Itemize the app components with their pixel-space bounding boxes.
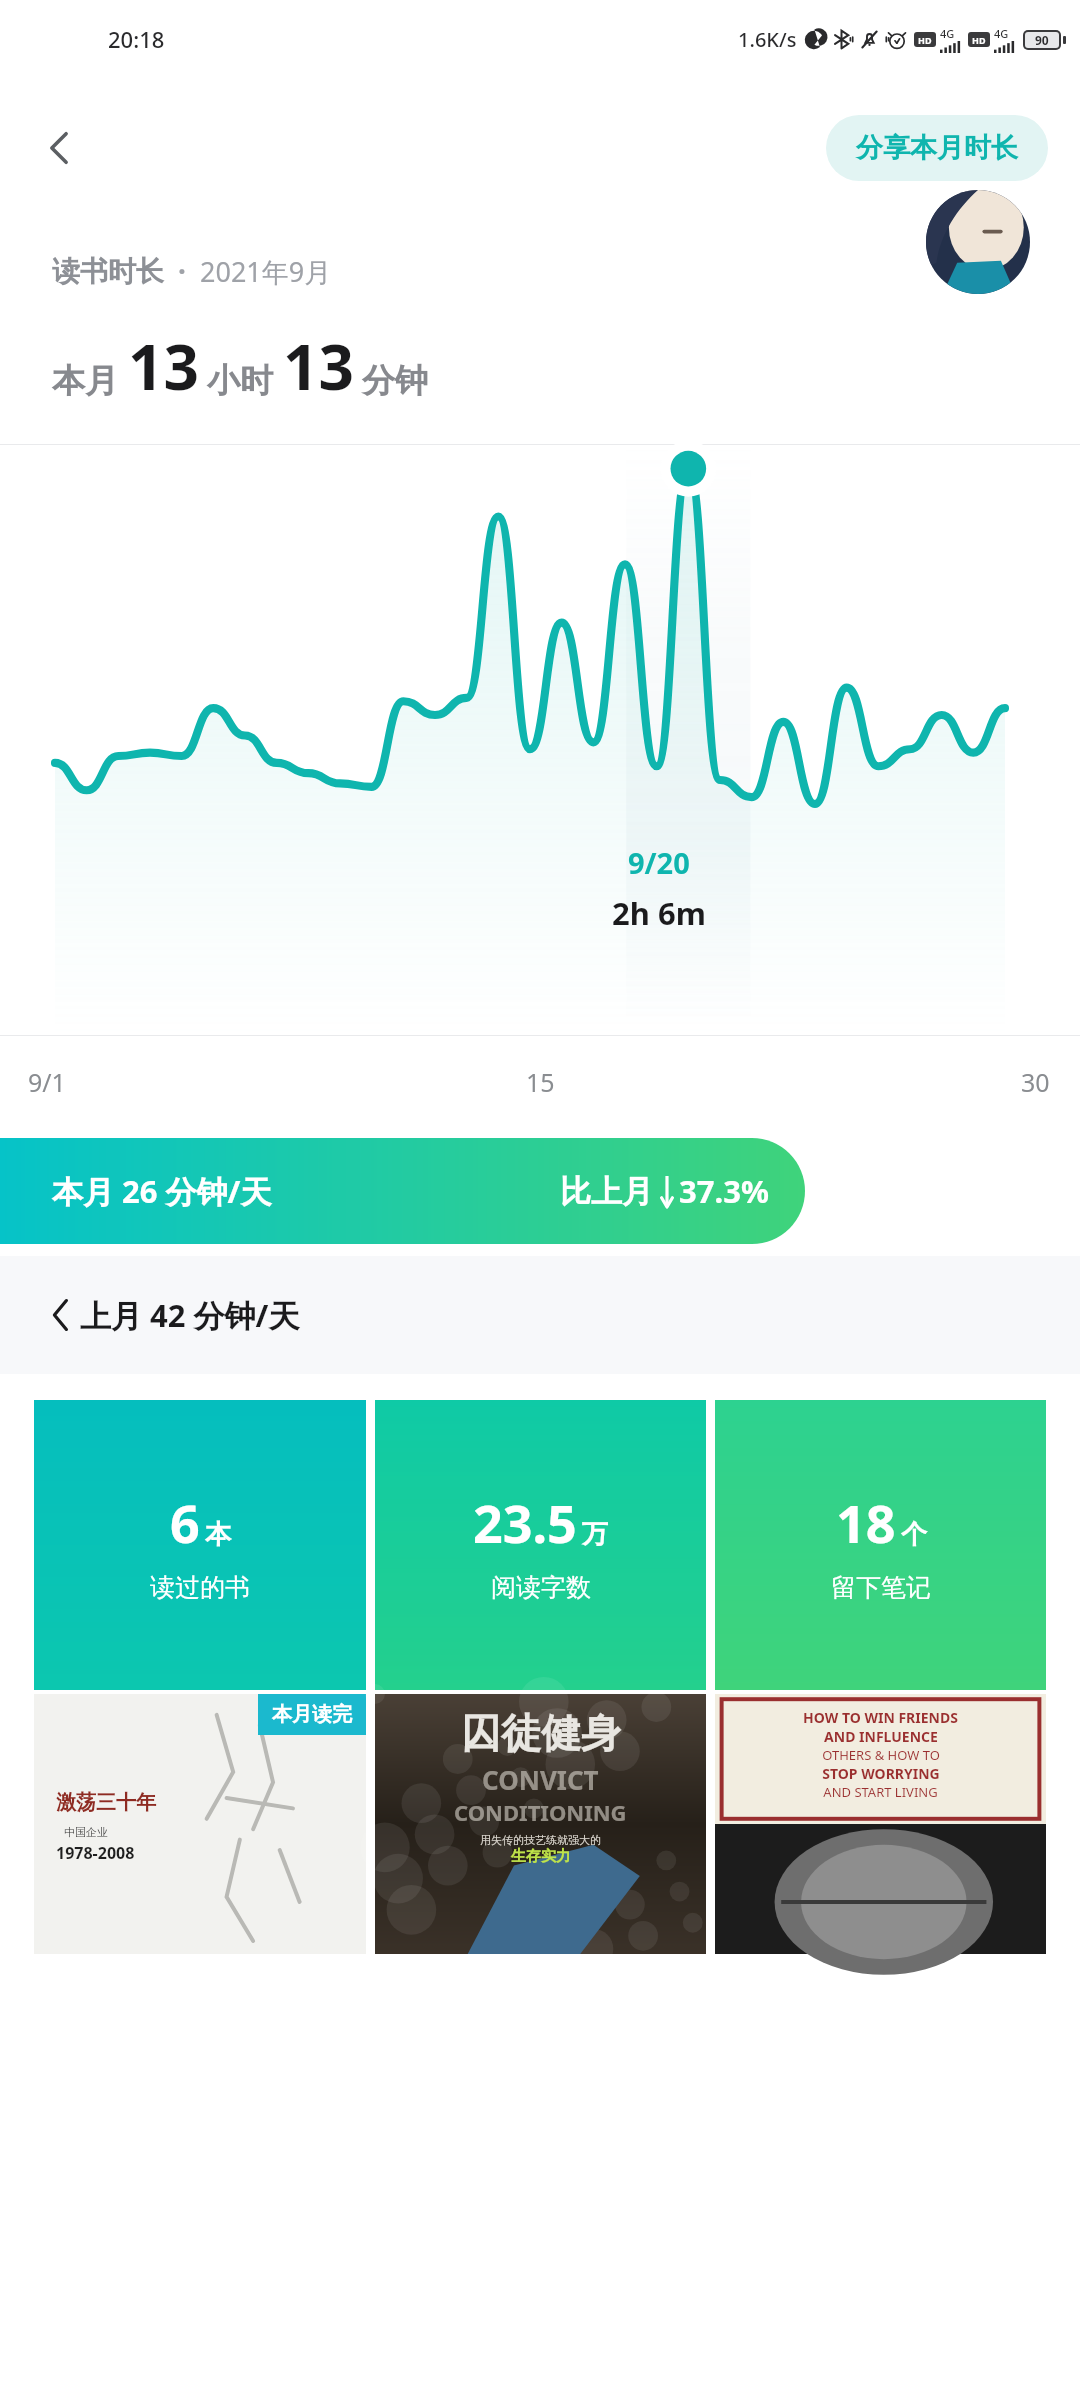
staticText: 4G (940, 26, 955, 41)
staticText: 小时 (207, 360, 273, 402)
staticText: 本月 (52, 360, 118, 402)
button[interactable]: 23.5 (375, 1400, 706, 1690)
button[interactable]: 分享本月时长 (826, 115, 1048, 181)
staticText: 30 (1021, 1065, 1050, 1099)
staticText: 6 (170, 1487, 200, 1558)
staticText: 4G (994, 26, 1009, 41)
staticText: 个 (901, 1518, 927, 1551)
staticText: 用失传的技艺练就强大的 (480, 1833, 601, 1847)
button[interactable]: 激荡三十年 (34, 1694, 366, 1954)
button[interactable]: 上月 42 分钟/天 (0, 1256, 1080, 1374)
button[interactable]: Back (24, 112, 96, 184)
button[interactable]: 18 (715, 1400, 1046, 1690)
button[interactable]: 囚徒健身 (375, 1694, 706, 1954)
staticText: 激荡三十年 (56, 1790, 156, 1815)
button[interactable]: 6 (34, 1400, 366, 1690)
staticText: 20:18 (108, 24, 165, 54)
staticText: 分钟 (362, 360, 428, 402)
staticText: 囚徒健身 (461, 1708, 621, 1758)
staticText: 中国企业 (64, 1825, 108, 1839)
staticText: 23.5 (473, 1487, 577, 1558)
staticText: CONVICT (482, 1762, 599, 1797)
staticText: HD (918, 34, 932, 46)
staticText: 阅读字数 (491, 1572, 591, 1603)
staticText: OTHERS & HOW TO (822, 1746, 940, 1764)
staticText: 本 (205, 1518, 231, 1551)
staticText: HOW TO WIN FRIENDS (803, 1708, 958, 1727)
staticText: 分享本月时长 (856, 131, 1018, 165)
staticText: 读书时长 (52, 254, 164, 289)
staticText: 1.6K/s (738, 26, 797, 53)
staticText: 37.3% (679, 1170, 769, 1212)
button[interactable]: 本月 26 分钟/天 (0, 1138, 805, 1244)
staticText: 13 (128, 324, 199, 408)
staticText: 9/20 (628, 843, 690, 882)
staticText: 本月 26 分钟/天 (52, 1170, 272, 1212)
staticText: CONDITIONING (454, 1797, 627, 1827)
staticText: 13 (283, 324, 354, 408)
staticText: AND START LIVING (823, 1783, 938, 1801)
staticText: 18 (836, 1487, 896, 1558)
staticText: 15 (526, 1065, 555, 1099)
staticText: 万 (582, 1518, 608, 1551)
staticText: 生存实力 (511, 1847, 571, 1866)
staticText: 2h 6m (612, 892, 706, 934)
staticText: 上月 42 分钟/天 (80, 1294, 300, 1336)
staticText: 本月读完 (272, 1702, 352, 1727)
staticText: 9/1 (28, 1065, 66, 1099)
staticText: 1978-2008 (56, 1842, 135, 1864)
staticText: 2021年9月 (200, 253, 332, 290)
staticText: 90 (1035, 32, 1049, 48)
staticText: STOP WORRYING (822, 1764, 940, 1783)
staticText: AND INFLUENCE (824, 1727, 938, 1746)
staticText: HD (972, 34, 986, 46)
button[interactable]: Profile (926, 190, 1030, 294)
staticText: 比上月 (560, 1172, 653, 1211)
staticText: 读过的书 (150, 1572, 250, 1603)
staticText: · (178, 252, 186, 290)
button[interactable]: HOW TO WIN FRIENDS (715, 1694, 1046, 1954)
staticText: 留下笔记 (831, 1572, 931, 1603)
